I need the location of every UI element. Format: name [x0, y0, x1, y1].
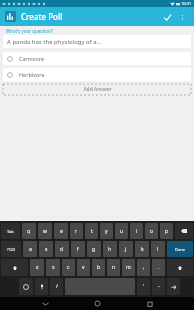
button[interactable]: Home	[89, 297, 105, 310]
staticText: 10:31	[181, 1, 192, 6]
staticText: s	[45, 246, 48, 253]
staticText: t	[91, 228, 93, 235]
staticText: j	[125, 246, 127, 253]
button[interactable]: -	[152, 278, 165, 295]
staticText: a	[29, 246, 32, 253]
staticText: Herbivore	[19, 71, 45, 78]
button[interactable]: h	[103, 241, 117, 257]
button[interactable]: v	[77, 259, 90, 276]
button[interactable]: /	[50, 278, 63, 295]
button[interactable]: a	[23, 241, 37, 257]
button[interactable]: j	[119, 241, 133, 257]
staticText: h	[108, 246, 112, 253]
button[interactable]: Emoji	[19, 278, 33, 295]
staticText: Tab	[7, 229, 14, 234]
button[interactable]: o	[145, 223, 158, 239]
staticText: q	[27, 228, 31, 235]
staticText: y	[105, 228, 108, 235]
button[interactable]: App icon	[5, 11, 16, 22]
staticText: p	[165, 228, 169, 235]
staticText: d	[60, 246, 64, 253]
button[interactable]: Tab	[1, 223, 20, 239]
button[interactable]: s	[39, 241, 53, 257]
button[interactable]: b	[92, 259, 105, 276]
button[interactable]: g	[87, 241, 101, 257]
staticText: Carnivore	[19, 55, 45, 62]
button[interactable]: Backspace	[175, 223, 193, 239]
button[interactable]: p	[160, 223, 173, 239]
staticText: /	[56, 283, 58, 290]
staticText: m	[126, 264, 131, 271]
staticText: c	[67, 264, 70, 271]
button[interactable]: Recent apps	[142, 297, 158, 310]
button[interactable]: c	[62, 259, 75, 276]
button[interactable]: k	[135, 241, 149, 257]
staticText: n	[112, 264, 116, 271]
staticText: A panda has the physiology of a...	[7, 38, 102, 46]
button[interactable]: Save poll	[159, 9, 175, 25]
staticText: v	[82, 264, 85, 271]
staticText: z	[36, 264, 39, 271]
staticText: Done	[175, 247, 186, 252]
button[interactable]: q	[22, 223, 36, 239]
button[interactable]: n	[107, 259, 120, 276]
button[interactable]: y	[100, 223, 113, 239]
button[interactable]: z	[30, 259, 44, 276]
staticText: .	[158, 264, 160, 271]
button[interactable]: m	[122, 259, 135, 276]
staticText: What's your question?	[6, 28, 53, 34]
staticText: w	[43, 228, 47, 235]
staticText: o	[150, 228, 154, 235]
button[interactable]: Next	[167, 278, 180, 295]
button[interactable]: Voice input	[35, 278, 48, 295]
button[interactable]: Back	[37, 297, 53, 310]
staticText: l	[157, 246, 159, 253]
staticText: ?123	[7, 247, 16, 252]
button[interactable]: More options	[175, 10, 189, 24]
button[interactable]: t	[85, 223, 98, 239]
staticText: -	[158, 283, 160, 290]
staticText: x	[52, 264, 55, 271]
button[interactable]: x	[46, 259, 60, 276]
button[interactable]: A panda has the physiology of a...	[3, 35, 191, 48]
staticText: Add Answer	[83, 86, 112, 93]
button[interactable]: r	[70, 223, 83, 239]
button[interactable]: d	[55, 241, 69, 257]
staticText: r	[75, 228, 78, 235]
button[interactable]: u	[115, 223, 128, 239]
button[interactable]: ?123	[1, 241, 21, 257]
staticText: k	[141, 246, 144, 253]
staticText: '	[143, 283, 145, 290]
staticText: b	[97, 264, 101, 271]
staticText: i	[136, 228, 138, 235]
button[interactable]: i	[130, 223, 143, 239]
button[interactable]: f	[71, 241, 85, 257]
button[interactable]: Done	[167, 241, 193, 257]
button[interactable]: Herbivore	[3, 68, 191, 81]
button[interactable]: '	[137, 278, 150, 295]
staticText: ,	[143, 264, 145, 271]
button[interactable]: w	[38, 223, 52, 239]
staticText: Create Poll	[21, 11, 63, 22]
button[interactable]: e	[54, 223, 68, 239]
button[interactable]: Shift	[167, 259, 193, 276]
staticText: u	[120, 228, 124, 235]
button[interactable]: ,	[137, 259, 150, 276]
button[interactable]: Carnivore	[3, 52, 191, 65]
staticText: e	[60, 228, 63, 235]
staticText: g	[92, 246, 96, 253]
button[interactable]: Shift	[1, 259, 28, 276]
button[interactable]: l	[151, 241, 165, 257]
button[interactable]: Add Answer	[3, 84, 191, 95]
staticText: f	[77, 246, 79, 253]
button[interactable]: .	[152, 259, 165, 276]
